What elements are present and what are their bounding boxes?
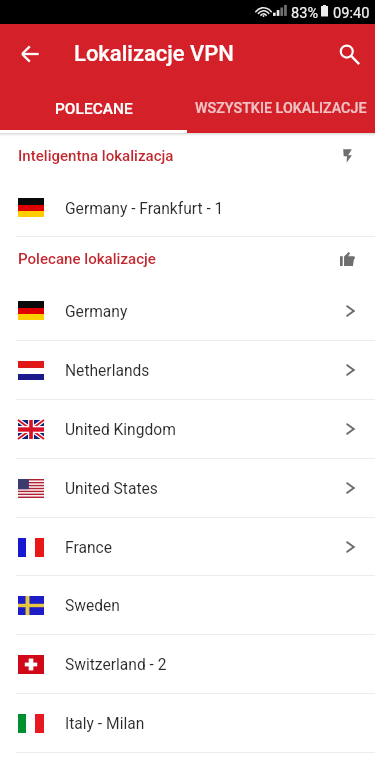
button[interactable]: Netherlands bbox=[0, 341, 375, 399]
staticText: 83% bbox=[291, 4, 319, 21]
staticText: United States bbox=[65, 480, 158, 498]
button[interactable]: United Kingdom bbox=[0, 400, 375, 458]
button[interactable]: United States bbox=[0, 459, 375, 517]
button[interactable]: Search bbox=[325, 30, 373, 78]
button[interactable]: POLECANE bbox=[0, 81, 187, 133]
button[interactable]: France bbox=[0, 518, 375, 576]
button[interactable]: Germany - Frankfurt - 1 bbox=[0, 178, 375, 237]
staticText: 09:40 bbox=[333, 4, 370, 21]
staticText: Inteligentna lokalizacja bbox=[18, 147, 174, 165]
staticText: France bbox=[65, 539, 112, 557]
staticText: WSZYSTKIE LOKALIZACJE bbox=[195, 100, 367, 117]
button[interactable]: Back bbox=[6, 30, 54, 78]
staticText: Sweden bbox=[65, 597, 120, 615]
staticText: Netherlands bbox=[65, 362, 150, 380]
button[interactable]: Sweden bbox=[0, 576, 375, 634]
staticText: Switzerland - 2 bbox=[65, 656, 167, 674]
button[interactable]: Italy - Milan bbox=[0, 694, 375, 752]
staticText: Germany - Frankfurt - 1 bbox=[65, 200, 224, 218]
staticText: United Kingdom bbox=[65, 421, 176, 439]
button[interactable]: Switzerland - 2 bbox=[0, 635, 375, 693]
staticText: POLECANE bbox=[55, 100, 133, 118]
staticText: Polecane lokalizacje bbox=[18, 250, 156, 268]
staticText: Lokalizacje VPN bbox=[74, 41, 234, 67]
button[interactable]: WSZYSTKIE LOKALIZACJE bbox=[187, 81, 375, 133]
staticText: Italy - Milan bbox=[65, 715, 145, 733]
button[interactable]: Germany bbox=[0, 281, 375, 340]
staticText: Germany bbox=[65, 303, 128, 321]
